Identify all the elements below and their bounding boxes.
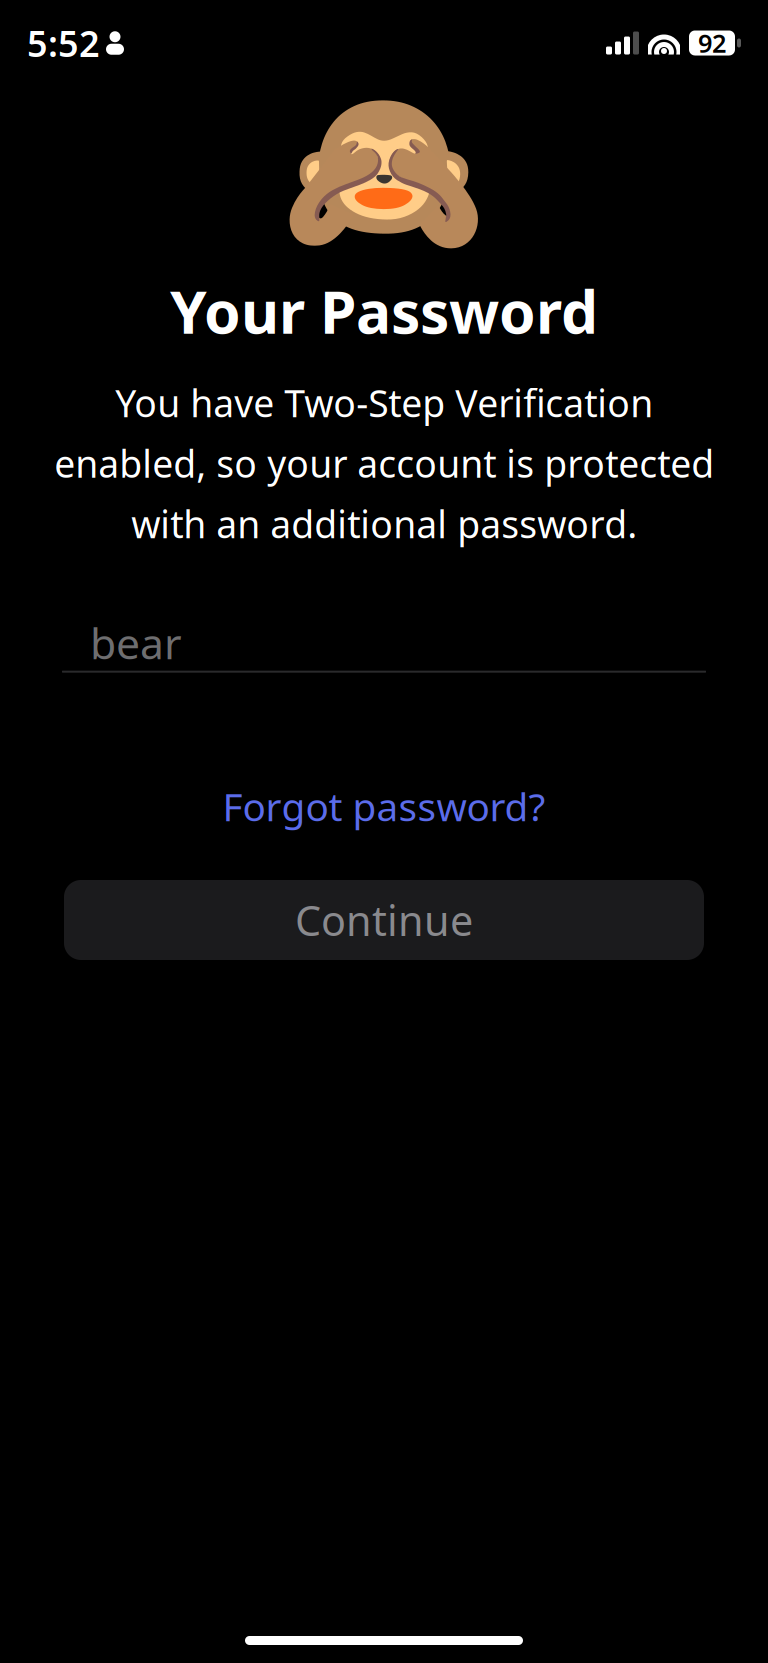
staticText: Your Password <box>170 272 598 350</box>
staticText: Continue <box>295 892 473 947</box>
staticText: Forgot password? <box>222 781 545 832</box>
button[interactable]: Forgot password? <box>210 771 557 842</box>
staticText: 92 <box>698 26 726 60</box>
staticText: 5:52 <box>27 19 100 67</box>
staticText: bear <box>90 614 182 671</box>
staticText: You have Two-Step Verification enabled, … <box>54 378 714 549</box>
button[interactable]: Continue <box>64 880 704 960</box>
staticText: 🙈 <box>280 76 488 266</box>
